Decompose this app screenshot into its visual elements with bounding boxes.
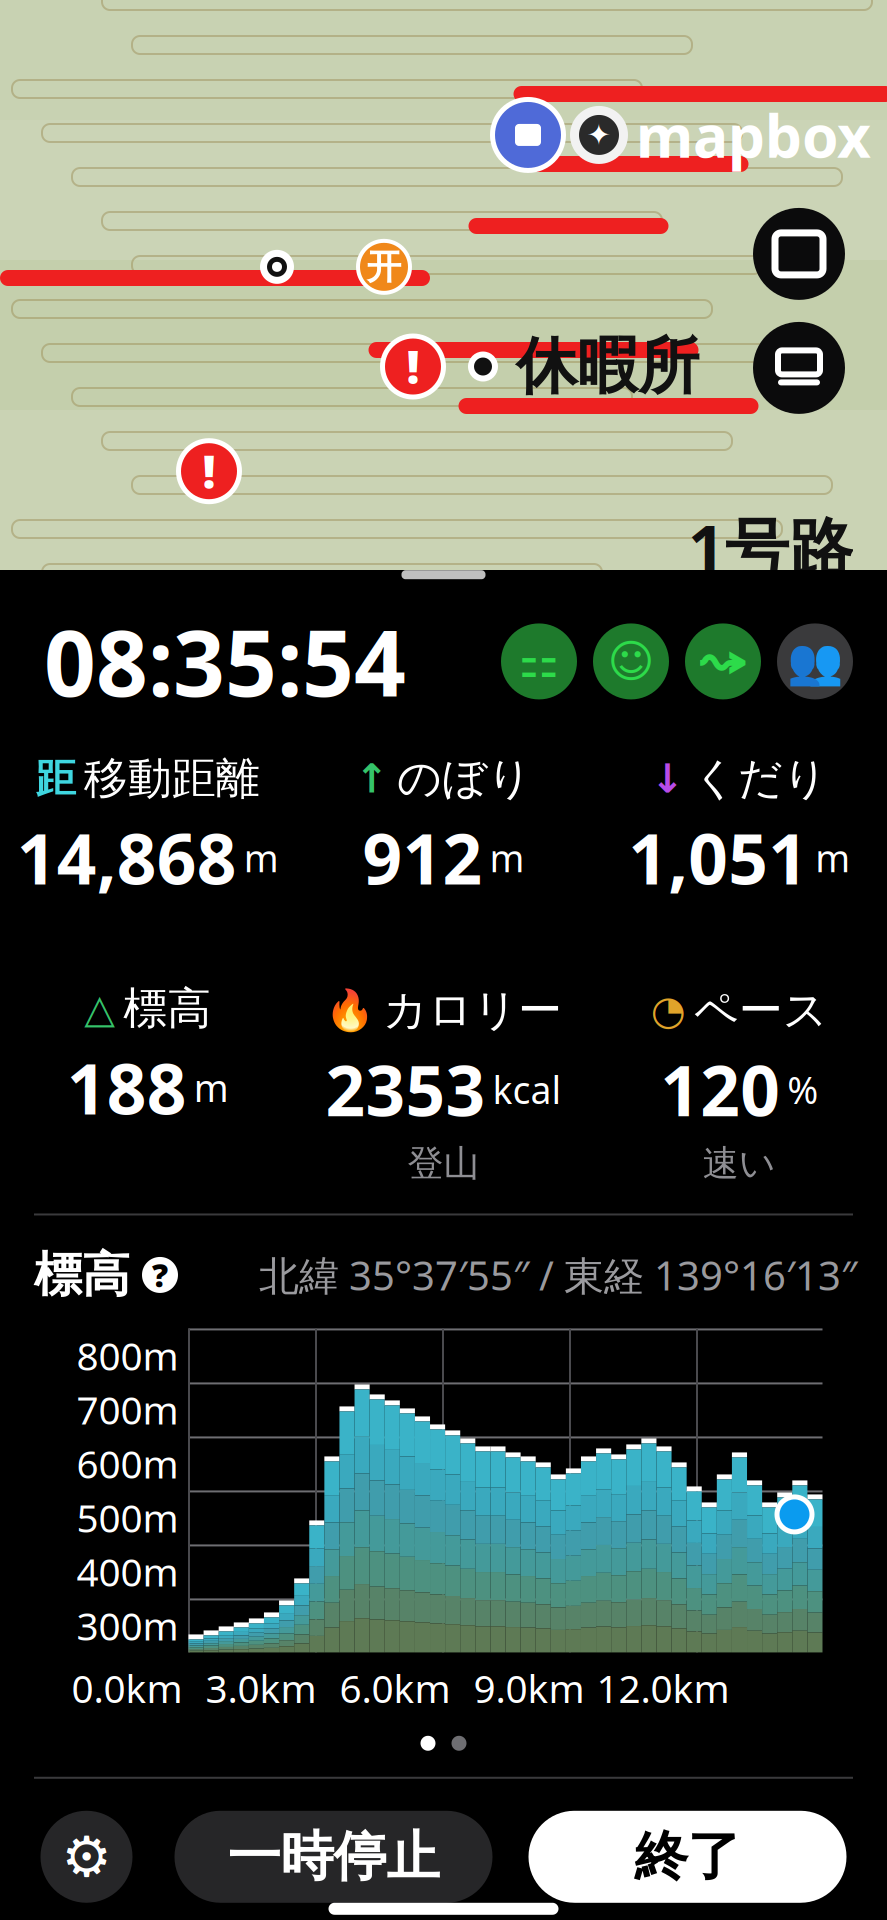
staticText: 120 (660, 1043, 780, 1135)
staticText: 移動距離 (84, 752, 260, 806)
staticText: m (489, 833, 524, 882)
staticText: 500m (76, 1492, 178, 1543)
button[interactable]: Route (685, 623, 761, 699)
staticText: 休暇所 (516, 329, 699, 404)
staticText: 700m (76, 1384, 178, 1435)
staticText: 12.0km (596, 1662, 729, 1714)
staticText: ! (202, 441, 215, 501)
staticText: ! (406, 336, 419, 397)
staticText: 終了 (634, 1824, 740, 1889)
staticText: ☺ (607, 636, 654, 687)
button[interactable]: Members (777, 623, 853, 699)
staticText: 標高 (34, 1245, 130, 1304)
staticText: m (194, 1063, 229, 1112)
staticText: 距 (36, 754, 76, 803)
staticText: % (787, 1065, 818, 1114)
staticText: 1,051 (628, 812, 808, 904)
staticText: 14,868 (17, 812, 237, 904)
button[interactable]: Fit route to screen (753, 208, 845, 300)
staticText: のぼり (397, 752, 532, 806)
staticText: くだり (693, 752, 828, 806)
staticText: △ (84, 986, 115, 1031)
staticText: ? (152, 1254, 168, 1296)
staticText: 188 (67, 1042, 187, 1134)
staticText: ✦ (586, 118, 611, 152)
button[interactable]: About elevation (142, 1254, 178, 1296)
staticText: 800m (76, 1330, 178, 1381)
staticText: 3.0km (205, 1662, 316, 1714)
button[interactable]: 一時停止 (174, 1811, 492, 1903)
staticText: 9.0km (473, 1662, 584, 1714)
staticText: 1号路 (688, 504, 853, 589)
staticText: ⤳ (696, 641, 749, 682)
staticText: 北緯 35°37′55″ / 東経 139°16′13″ (259, 1248, 857, 1301)
staticText: kcal (492, 1065, 561, 1114)
staticText: 👥 (787, 635, 843, 687)
staticText: 400m (76, 1546, 178, 1597)
staticText: 標高 (123, 981, 211, 1035)
staticText: m (244, 833, 279, 882)
staticText: 速い (703, 1141, 776, 1186)
staticText: ◔ (651, 988, 686, 1033)
staticText: カロリー (383, 983, 562, 1037)
staticText: ↓ (651, 756, 685, 801)
staticText: ↑ (355, 756, 389, 801)
staticText: 开 (366, 246, 401, 288)
button[interactable]: Map layers (753, 322, 845, 414)
button[interactable]: Settings (40, 1811, 132, 1903)
staticText: 600m (76, 1438, 178, 1489)
staticText: 2353 (325, 1043, 485, 1135)
staticText: m (815, 833, 850, 882)
staticText: 300m (76, 1600, 178, 1651)
staticText: ⚙ (61, 1825, 111, 1889)
staticText: 08:35:54 (44, 601, 406, 722)
staticText: 6.0km (339, 1662, 450, 1714)
staticText: mapbox (636, 96, 871, 174)
button[interactable]: Waypoints (501, 623, 577, 699)
button[interactable]: Messages (593, 623, 669, 699)
staticText: 912 (362, 812, 482, 904)
staticText: 一時停止 (227, 1824, 439, 1889)
staticText: 0.0km (71, 1662, 182, 1714)
staticText: ペース (694, 983, 828, 1037)
staticText: ⚏ (518, 636, 559, 687)
button[interactable]: 終了 (528, 1811, 846, 1903)
staticText: 登山 (407, 1141, 479, 1186)
staticText: 🔥 (325, 987, 375, 1033)
